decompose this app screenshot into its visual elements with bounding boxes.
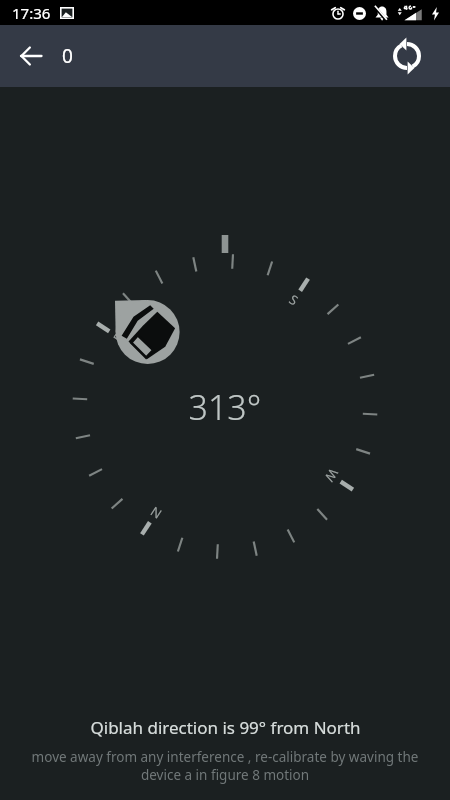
staticText: Qiblah direction is 99° from North: [90, 716, 361, 739]
staticText: move away from any interference , re-cal…: [24, 748, 426, 784]
button[interactable]: Back: [0, 25, 62, 87]
staticText: 17:36: [12, 3, 51, 23]
button[interactable]: Refresh: [364, 25, 450, 87]
staticText: 0: [62, 43, 73, 69]
